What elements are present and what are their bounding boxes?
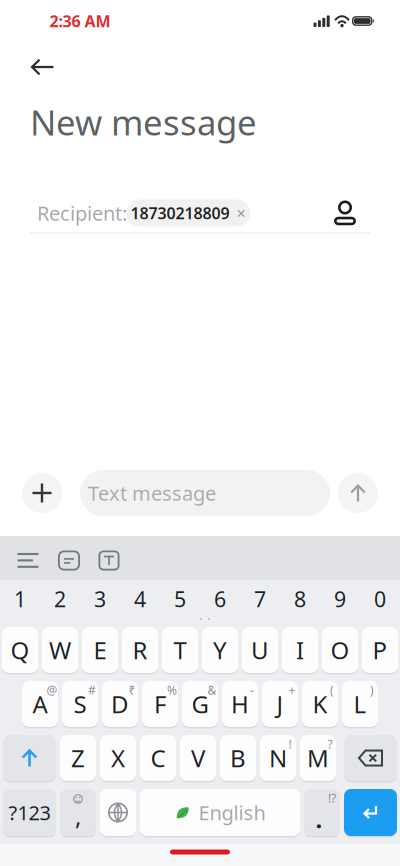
- button[interactable]: Text message: [80, 470, 330, 516]
- staticText: 7: [254, 585, 266, 613]
- button[interactable]: N: [260, 735, 296, 781]
- staticText: 1: [14, 585, 26, 613]
- button[interactable]: M: [300, 735, 336, 781]
- staticText: !: [288, 736, 291, 752]
- staticText: G: [191, 688, 208, 720]
- button[interactable]: 6: [202, 580, 238, 618]
- button[interactable]: Period: [304, 789, 340, 836]
- button[interactable]: 1: [2, 580, 38, 618]
- staticText: A: [32, 688, 47, 720]
- staticText: ?123: [8, 799, 50, 826]
- staticText: C: [150, 742, 165, 774]
- button[interactable]: 2: [42, 580, 78, 618]
- staticText: T: [173, 634, 186, 666]
- staticText: ): [370, 682, 374, 698]
- staticText: 6: [214, 585, 226, 613]
- button[interactable]: 0: [362, 580, 398, 618]
- staticText: 9: [334, 585, 346, 613]
- staticText: 18730218809: [130, 202, 229, 224]
- button[interactable]: Y: [202, 627, 238, 673]
- button[interactable]: 7: [242, 580, 278, 618]
- button[interactable]: Language: [100, 789, 136, 836]
- staticText: R: [132, 634, 147, 666]
- staticText: ?: [327, 736, 332, 752]
- button[interactable]: Delete: [344, 735, 397, 781]
- staticText: -: [250, 682, 254, 698]
- button[interactable]: O: [322, 627, 358, 673]
- button[interactable]: 8: [282, 580, 318, 618]
- button[interactable]: Space: [140, 789, 300, 836]
- staticText: 3: [94, 585, 106, 613]
- button[interactable]: Comma: [60, 789, 96, 836]
- button[interactable]: V: [180, 735, 216, 781]
- button[interactable]: X: [100, 735, 136, 781]
- staticText: Text message: [88, 480, 216, 506]
- staticText: L: [353, 688, 366, 720]
- button[interactable]: T: [162, 627, 198, 673]
- staticText: J: [276, 688, 283, 720]
- button[interactable]: 18730218809: [126, 199, 250, 226]
- button[interactable]: Clipboard: [58, 550, 80, 570]
- staticText: K: [312, 688, 327, 720]
- staticText: Y: [213, 634, 227, 666]
- staticText: &: [207, 682, 216, 698]
- button[interactable]: J: [262, 681, 298, 727]
- button[interactable]: D: [102, 681, 138, 727]
- staticText: 5: [174, 585, 186, 613]
- button[interactable]: U: [242, 627, 278, 673]
- button[interactable]: Return: [344, 789, 397, 836]
- button[interactable]: 3: [82, 580, 118, 618]
- button[interactable]: H: [222, 681, 258, 727]
- button[interactable]: Symbols: [3, 789, 56, 836]
- button[interactable]: I: [282, 627, 318, 673]
- staticText: ₹: [128, 682, 135, 698]
- button[interactable]: L: [342, 681, 378, 727]
- button[interactable]: P: [362, 627, 398, 673]
- button[interactable]: S: [62, 681, 98, 727]
- staticText: X: [111, 742, 125, 774]
- button[interactable]: G: [182, 681, 218, 727]
- staticText: N: [269, 742, 287, 774]
- button[interactable]: Text editing: [98, 550, 119, 570]
- button[interactable]: 5: [162, 580, 198, 618]
- staticText: V: [191, 742, 205, 774]
- staticText: B: [230, 742, 246, 774]
- button[interactable]: W: [42, 627, 78, 673]
- staticText: .: [315, 803, 322, 835]
- button[interactable]: F: [142, 681, 178, 727]
- button[interactable]: Q: [2, 627, 38, 673]
- staticText: P: [372, 634, 387, 666]
- button[interactable]: Keyboard menu: [17, 553, 38, 568]
- button[interactable]: A: [22, 681, 58, 727]
- button[interactable]: Attach: [22, 473, 62, 513]
- button[interactable]: E: [82, 627, 118, 673]
- button[interactable]: Send: [338, 473, 378, 513]
- staticText: D: [111, 688, 129, 720]
- staticText: +: [288, 682, 295, 698]
- staticText: 8: [294, 585, 306, 613]
- staticText: U: [251, 634, 269, 666]
- staticText: New message: [30, 99, 257, 145]
- staticText: (: [330, 682, 334, 698]
- button[interactable]: K: [302, 681, 338, 727]
- staticText: O: [330, 634, 349, 666]
- button[interactable]: Z: [60, 735, 96, 781]
- staticText: M: [307, 742, 329, 774]
- button[interactable]: 9: [322, 580, 358, 618]
- staticText: I: [296, 634, 304, 666]
- button[interactable]: B: [220, 735, 256, 781]
- staticText: E: [93, 634, 106, 666]
- staticText: ×: [236, 202, 245, 224]
- button[interactable]: Choose contact: [330, 196, 360, 230]
- staticText: !?: [328, 790, 336, 806]
- staticText: S: [73, 688, 86, 720]
- button[interactable]: Back: [21, 45, 65, 89]
- staticText: W: [49, 634, 71, 666]
- staticText: #: [88, 682, 96, 698]
- button[interactable]: R: [122, 627, 158, 673]
- staticText: H: [231, 688, 249, 720]
- button[interactable]: 4: [122, 580, 158, 618]
- button[interactable]: Shift: [3, 735, 56, 781]
- staticText: ,: [75, 800, 81, 832]
- button[interactable]: C: [140, 735, 176, 781]
